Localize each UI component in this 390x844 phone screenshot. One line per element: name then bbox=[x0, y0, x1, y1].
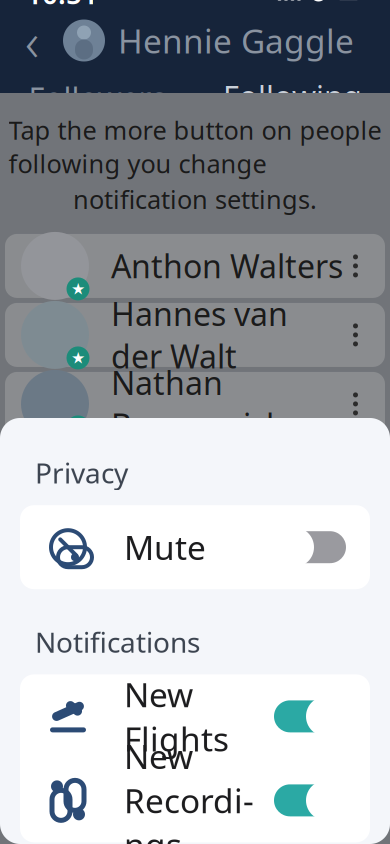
staticText: notification settings. bbox=[73, 182, 317, 216]
staticText: Mute bbox=[124, 525, 206, 569]
button[interactable]: New Flights bbox=[20, 674, 370, 758]
button[interactable]: Followers bbox=[0, 73, 195, 121]
staticText: Nathan Braunswick bbox=[111, 361, 283, 446]
staticText: Tap the more button on people following … bbox=[8, 113, 381, 180]
staticText: O bbox=[39, 446, 70, 499]
staticText: Followers bbox=[28, 77, 166, 118]
staticText: New Recordings bbox=[124, 734, 254, 844]
button[interactable]: Mute bbox=[20, 505, 370, 589]
button[interactable]: New Recordings bbox=[20, 758, 370, 842]
button[interactable]: Following bbox=[195, 73, 390, 121]
staticText: ‹ bbox=[25, 5, 39, 76]
staticText: ★ bbox=[71, 349, 85, 367]
staticText: New Flights bbox=[124, 672, 229, 761]
button[interactable]: Back bbox=[10, 18, 54, 62]
staticText: ★ bbox=[71, 280, 85, 298]
staticText: Following bbox=[223, 76, 362, 116]
staticText: 10:51 bbox=[26, 0, 98, 12]
staticText: Notifications bbox=[35, 623, 200, 660]
staticText: Privacy bbox=[35, 454, 128, 491]
staticText: Anthon Walters bbox=[111, 245, 343, 287]
staticText: Hannes van der Walt bbox=[111, 292, 288, 377]
staticText: Hennie Gaggle bbox=[118, 18, 354, 63]
staticText: Oda Mühr bbox=[111, 452, 264, 494]
